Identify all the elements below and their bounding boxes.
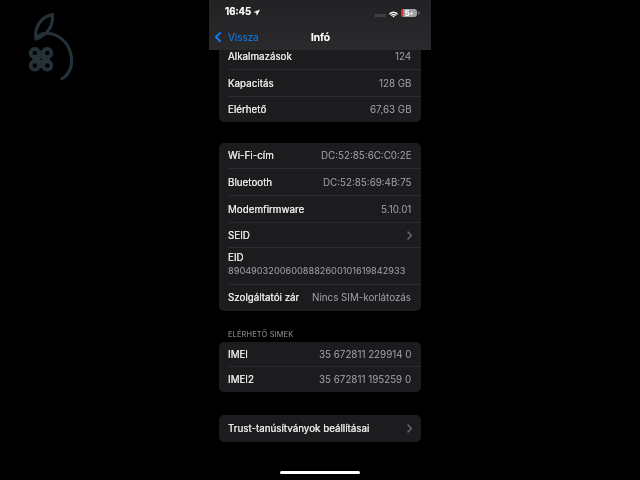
staticText: Nincs SIM-korlátozás <box>312 292 412 304</box>
staticText: Szolgáltatói zár <box>228 292 300 304</box>
staticText: 67,63 GB <box>370 104 412 116</box>
button[interactable]: Alkalmazások <box>219 44 421 70</box>
button[interactable]: Vissza <box>212 28 262 46</box>
button[interactable]: Modemfirmware <box>219 196 421 223</box>
staticText: DC:52:85:69:4B:75 <box>323 177 412 189</box>
staticText: EID <box>228 252 244 264</box>
button[interactable]: Elérhető <box>219 97 421 122</box>
button[interactable]: Kapacitás <box>219 70 421 97</box>
button[interactable]: IMEI <box>219 342 421 367</box>
button[interactable]: IMEI2 <box>219 367 421 392</box>
staticText: SEID <box>228 230 250 242</box>
staticText: IMEI <box>228 349 249 361</box>
button[interactable]: Szolgáltatói zár <box>219 285 421 311</box>
staticText: 124 <box>395 51 412 63</box>
staticText: Alkalmazások <box>228 51 292 63</box>
button[interactable]: Trust-tanúsítványok beállításai <box>219 415 421 442</box>
staticText: 5.10.01 <box>381 204 412 216</box>
staticText: Kapacitás <box>228 78 274 90</box>
staticText: Vissza <box>228 31 259 43</box>
staticText: Infó <box>311 31 330 43</box>
staticText: DC:52:85:6C:C0:2E <box>321 150 412 162</box>
staticText: 5 <box>405 9 410 17</box>
staticText: Bluetooth <box>228 177 273 189</box>
staticText: ELÉRHETŐ SIMEK <box>228 330 294 339</box>
button[interactable]: EID <box>219 248 421 285</box>
staticText: 35 672811 229914 0 <box>319 349 412 361</box>
staticText: 35 672811 195259 0 <box>319 374 412 386</box>
button[interactable]: SEID <box>219 223 421 248</box>
staticText: 89049032006008882600101619842933 <box>228 265 406 276</box>
staticText: Trust-tanúsítványok beállításai <box>228 423 370 435</box>
staticText: Wi-Fi-cím <box>228 150 274 162</box>
button[interactable]: Bluetooth <box>219 169 421 196</box>
staticText: Elérhető <box>228 104 267 116</box>
button[interactable]: Wi-Fi-cím <box>219 143 421 169</box>
staticText: IMEI2 <box>228 374 254 386</box>
staticText: 128 GB <box>379 78 412 90</box>
staticText: 16:45 <box>225 6 252 18</box>
staticText: Modemfirmware <box>228 204 305 216</box>
